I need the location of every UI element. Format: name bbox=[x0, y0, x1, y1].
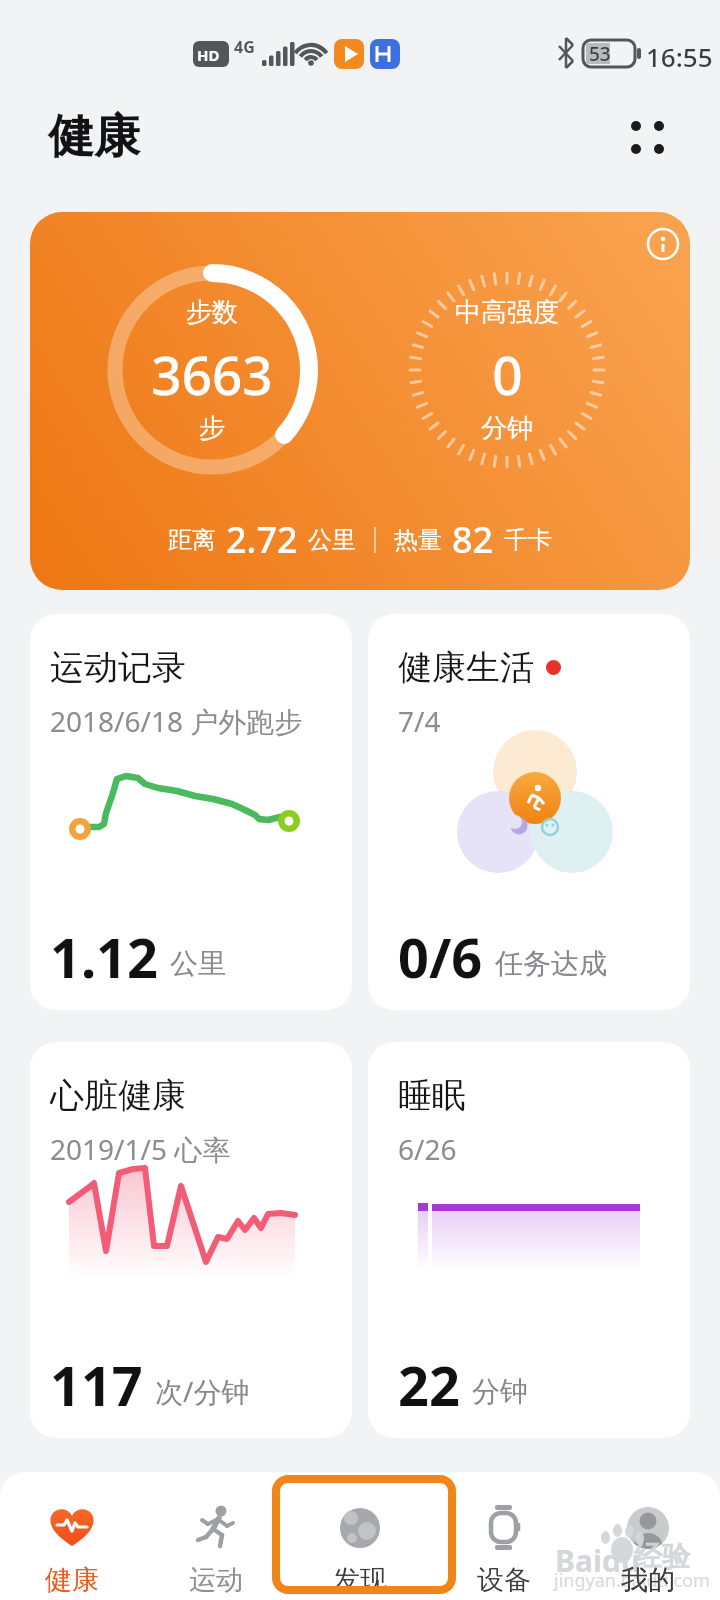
button[interactable]: 睡眠 bbox=[368, 1042, 690, 1438]
staticText: 2018/6/18 户外跑步 bbox=[50, 702, 303, 740]
button[interactable]: 运动 bbox=[144, 1472, 288, 1600]
staticText: 经验 bbox=[634, 1539, 690, 1574]
staticText: 分钟 bbox=[481, 412, 533, 445]
staticText: 我的 bbox=[621, 1563, 675, 1597]
staticText: 步 bbox=[199, 412, 225, 445]
staticText: 任务达成 bbox=[495, 946, 607, 981]
staticText: 睡眠 bbox=[398, 1074, 466, 1117]
staticText: 2019/1/5 心率 bbox=[50, 1130, 231, 1168]
button[interactable]: 健康生活 bbox=[368, 614, 690, 1010]
staticText: 距离 bbox=[168, 525, 216, 555]
staticText: 步数 bbox=[186, 296, 238, 329]
button[interactable]: 运动记录 bbox=[30, 614, 352, 1010]
staticText: 运动记录 bbox=[50, 646, 186, 689]
staticText: Baidu bbox=[555, 1540, 641, 1581]
staticText: 我的 bbox=[621, 1563, 675, 1597]
staticText: 117 bbox=[50, 1348, 143, 1422]
staticText: 健康 bbox=[45, 1563, 99, 1597]
staticText: jingyan.baidu.com bbox=[554, 1568, 710, 1593]
staticText: 1.12 bbox=[50, 920, 158, 994]
staticText: 心脏健康 bbox=[50, 1074, 186, 1117]
button[interactable] bbox=[610, 80, 720, 200]
staticText: 健康生活 bbox=[398, 646, 534, 689]
button[interactable]: 步数 bbox=[30, 212, 690, 590]
staticText: 2.72 bbox=[226, 515, 298, 564]
staticText: 82 bbox=[452, 515, 494, 564]
staticText: 健康 bbox=[48, 108, 140, 166]
staticText: 千卡 bbox=[504, 525, 552, 555]
staticText: 22 bbox=[398, 1348, 460, 1422]
staticText: 6/26 bbox=[398, 1130, 457, 1168]
staticText: 3663 bbox=[151, 338, 273, 410]
staticText: 运动 bbox=[189, 1563, 243, 1597]
staticText: 发现 bbox=[333, 1563, 387, 1597]
button[interactable]: 健康 bbox=[0, 1472, 144, 1600]
staticText: 中高强度 bbox=[455, 296, 559, 329]
staticText: HD bbox=[197, 45, 220, 65]
staticText: 16:55 bbox=[646, 39, 713, 74]
staticText: 分钟 bbox=[472, 1374, 528, 1409]
staticText: 7/4 bbox=[398, 702, 441, 740]
button[interactable]: 我的 bbox=[576, 1472, 720, 1600]
staticText: 热量 bbox=[394, 525, 442, 555]
staticText: 4G bbox=[234, 36, 255, 58]
button[interactable]: 心脏健康 bbox=[30, 1042, 352, 1438]
staticText: 公里 bbox=[170, 946, 226, 981]
staticText: 设备 bbox=[477, 1563, 531, 1597]
staticText: 公里 bbox=[308, 525, 356, 555]
staticText: 次/分钟 bbox=[155, 1372, 250, 1410]
staticText: 0/6 bbox=[398, 920, 483, 994]
button[interactable]: 设备 bbox=[432, 1472, 576, 1600]
button[interactable]: 发现 bbox=[288, 1472, 432, 1600]
staticText: 0 bbox=[492, 338, 523, 410]
staticText: 53 bbox=[589, 41, 611, 67]
